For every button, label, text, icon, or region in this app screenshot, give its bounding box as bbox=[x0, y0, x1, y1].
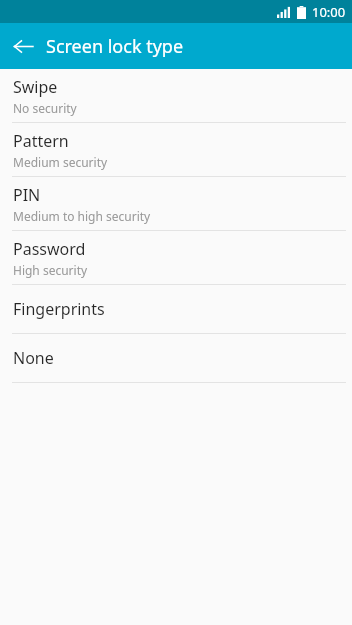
staticText: Medium to high security bbox=[13, 208, 151, 224]
staticText: Password bbox=[13, 238, 86, 260]
staticText: Fingerprints bbox=[13, 298, 105, 320]
staticText: Swipe bbox=[13, 76, 58, 98]
button[interactable]: Navigate up bbox=[0, 23, 46, 69]
staticText: Pattern bbox=[13, 130, 69, 152]
staticText: PIN bbox=[13, 184, 41, 206]
button[interactable]: Pattern bbox=[0, 123, 352, 176]
button[interactable]: Fingerprints bbox=[0, 285, 352, 333]
button[interactable]: Password bbox=[0, 231, 352, 284]
staticText: 10:00 bbox=[312, 3, 346, 21]
staticText: None bbox=[13, 347, 54, 369]
staticText: No security bbox=[13, 100, 77, 116]
staticText: Screen lock type bbox=[46, 34, 184, 59]
staticText: Medium security bbox=[13, 154, 108, 170]
button[interactable]: None bbox=[0, 334, 352, 382]
button[interactable]: Swipe bbox=[0, 69, 352, 122]
staticText: High security bbox=[13, 262, 88, 278]
button[interactable]: PIN bbox=[0, 177, 352, 230]
